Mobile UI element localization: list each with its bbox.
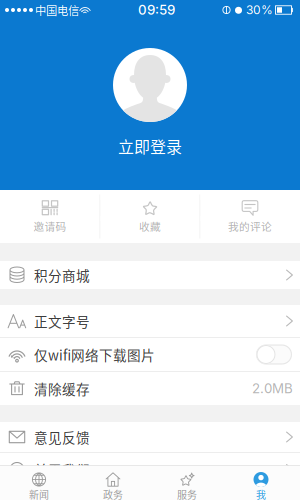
staticText: 我 — [256, 487, 266, 500]
button[interactable]: 收藏 — [100, 190, 199, 243]
staticText: 政务 — [103, 487, 123, 500]
staticText: 邀请码 — [33, 218, 66, 234]
staticText: 2.0MB — [252, 380, 293, 396]
button[interactable]: 正文字号 — [0, 305, 300, 337]
staticText: 仅wifi网络下载图片 — [34, 345, 155, 364]
button[interactable]: 新闻 — [2, 466, 76, 500]
button[interactable]: 关于我们 — [0, 453, 300, 486]
button[interactable]: 我的评论 — [200, 190, 299, 243]
staticText: 服务 — [177, 487, 197, 500]
button[interactable]: 服务 — [150, 466, 224, 500]
staticText: 立即登录 — [118, 134, 182, 158]
staticText: 30% — [246, 3, 273, 17]
button[interactable]: 仅wifi网络下载图片 — [0, 338, 300, 371]
staticText: 中国电信 — [35, 2, 79, 18]
button[interactable]: 积分商城 — [0, 261, 300, 289]
button[interactable]: 邀请码 — [0, 190, 99, 243]
staticText: 正文字号 — [34, 311, 90, 331]
staticText: 积分商城 — [34, 265, 90, 285]
staticText: 新闻 — [29, 487, 49, 500]
staticText: 我的评论 — [228, 218, 272, 234]
staticText: 09:59 — [138, 2, 175, 18]
staticText: 收藏 — [139, 218, 161, 234]
button[interactable]: 立即登录 — [90, 48, 210, 153]
button[interactable]: 政务 — [76, 466, 150, 500]
button[interactable]: 我 — [224, 466, 298, 500]
button[interactable]: 清除缓存 — [0, 372, 300, 405]
staticText: 关于我们 — [34, 460, 90, 479]
staticText: 意见反馈 — [34, 427, 90, 447]
staticText: 清除缓存 — [34, 379, 90, 398]
button[interactable]: 意见反馈 — [0, 422, 300, 452]
